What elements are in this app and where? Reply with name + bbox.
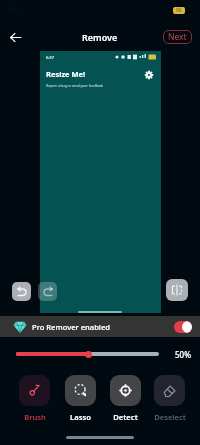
button[interactable]: Back [5, 27, 25, 47]
button[interactable]: Deselect [148, 375, 191, 422]
staticText: Brush [24, 412, 46, 422]
staticText: Lasso [70, 412, 91, 422]
button[interactable]: Settings [143, 69, 155, 81]
button[interactable]: Compare before and after [166, 279, 188, 301]
button[interactable]: Brush size [85, 351, 92, 358]
staticText: Deselect [154, 412, 186, 422]
staticText: Remove [82, 31, 118, 43]
button[interactable]: Next [163, 30, 192, 44]
staticText: Report a bug or send your feedback [46, 83, 104, 88]
staticText: Pro Remover enabled [32, 322, 110, 332]
button[interactable]: Pro Remover enabled [0, 316, 200, 337]
button[interactable]: Detect [104, 375, 147, 422]
button[interactable]: Brush [13, 375, 56, 422]
staticText: Next [168, 31, 187, 43]
staticText: Detect [113, 412, 138, 422]
staticText: 90 [176, 7, 182, 14]
staticText: Resize Me! [46, 69, 86, 79]
button[interactable]: Lasso [59, 375, 102, 422]
button[interactable]: Redo [38, 282, 57, 301]
staticText: 6:37 [46, 55, 54, 60]
staticText: 50% [175, 349, 191, 360]
button[interactable]: Undo [12, 282, 31, 301]
